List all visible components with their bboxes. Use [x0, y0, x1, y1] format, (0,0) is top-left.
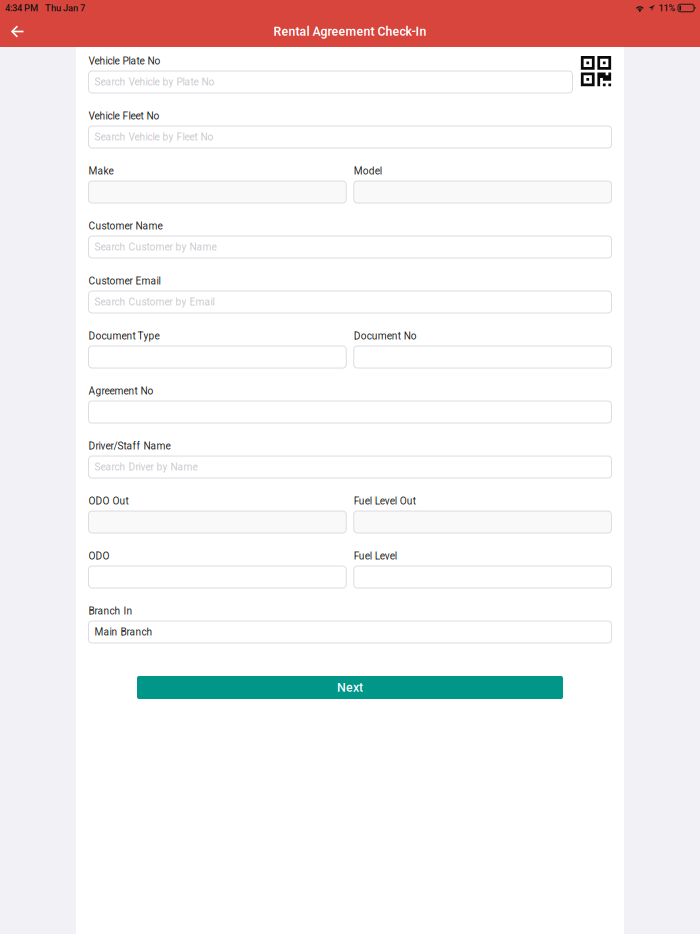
staticText: Fuel Level Out [354, 495, 416, 507]
staticText: Agreement No [88, 385, 153, 397]
button[interactable]: Scan QR code [580, 55, 611, 90]
button[interactable]: Next [137, 676, 563, 699]
staticText: Main Branch [94, 626, 152, 638]
staticText: Document Type [88, 330, 159, 342]
staticText: 11% [658, 2, 675, 13]
staticText: Customer Name [88, 220, 162, 232]
staticText: Search Customer by Name [94, 241, 216, 253]
staticText: ODO Out [88, 495, 128, 507]
staticText: Next [337, 680, 363, 695]
staticText: Vehicle Plate No [88, 55, 160, 67]
staticText: Driver/Staff Name [88, 440, 170, 452]
staticText: Rental Agreement Check-In [273, 24, 426, 39]
staticText: Model [354, 165, 382, 177]
staticText: Search Customer by Email [94, 296, 214, 308]
staticText: Search Vehicle by Fleet No [94, 131, 213, 143]
staticText: Document No [354, 330, 417, 342]
staticText: Branch In [88, 605, 132, 617]
staticText: Fuel Level [354, 550, 397, 562]
staticText: Vehicle Fleet No [88, 110, 159, 122]
button[interactable]: Back [0, 16, 34, 47]
staticText: Search Driver by Name [94, 461, 197, 473]
staticText: Search Vehicle by Plate No [94, 76, 214, 88]
staticText: Make [88, 165, 113, 177]
staticText: 4:34 PM [5, 2, 38, 13]
staticText: Thu Jan 7 [45, 2, 85, 13]
staticText: Customer Email [88, 275, 160, 287]
staticText: ODO [88, 550, 109, 562]
